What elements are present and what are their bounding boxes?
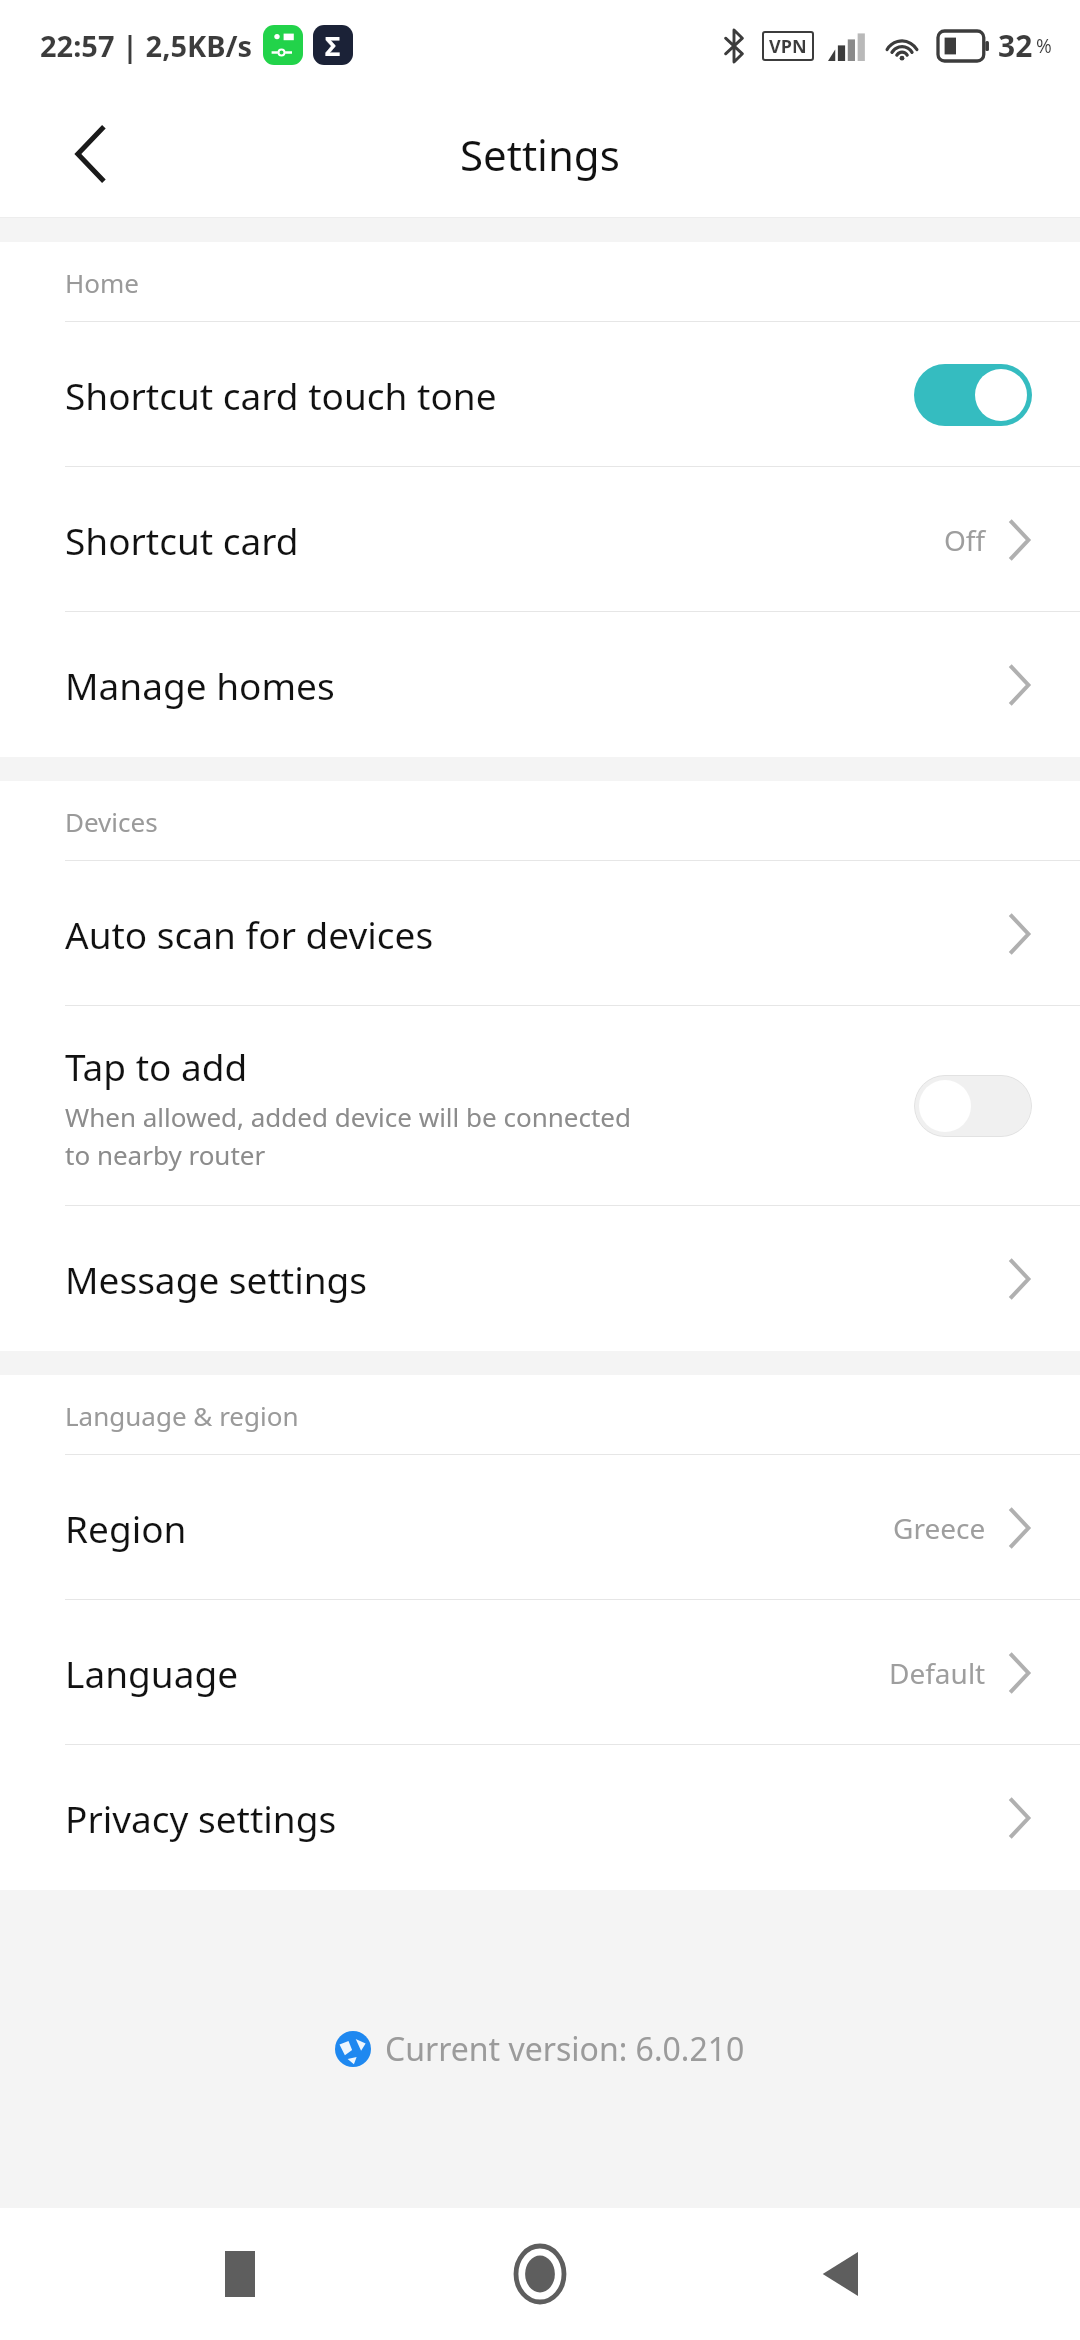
staticText: Off [944,521,986,559]
staticText: Language [65,1648,239,1698]
staticText: Greece [893,1509,986,1547]
button[interactable]: Auto scan for devices [0,861,1080,1006]
button[interactable]: Manage homes [0,612,1080,757]
staticText: VPN [769,34,807,59]
staticText: Shortcut card [65,515,299,565]
staticText: Shortcut card touch tone [65,370,497,420]
staticText: Auto scan for devices [65,909,434,959]
button[interactable]: Back [40,104,140,204]
button[interactable]: Privacy settings [0,1745,1080,1890]
staticText: Default [889,1654,986,1692]
staticText: Region [65,1503,187,1553]
button[interactable]: Tap to add [0,1006,1080,1206]
button[interactable]: Home [480,2214,600,2334]
staticText: Message settings [65,1254,368,1304]
staticText: Σ [325,28,341,63]
staticText: 22:57 | 2,5KB/s [40,26,253,65]
button[interactable]: Region [0,1455,1080,1600]
staticText: Home [65,265,139,300]
staticText: 32 [998,25,1033,66]
staticText: % [1036,33,1052,59]
staticText: Current version: 6.0.210 [385,2027,745,2071]
button[interactable]: Language [0,1600,1080,1745]
staticText: Tap to add [65,1041,248,1091]
staticText: When allowed, added device will be conne… [65,1099,631,1172]
button[interactable]: Message settings [0,1206,1080,1351]
button[interactable]: Toggle on [914,364,1032,426]
button[interactable]: Toggle off [914,1075,1032,1137]
staticText: Devices [65,804,158,839]
staticText: Manage homes [65,660,335,710]
staticText: Language & region [65,1398,299,1433]
button[interactable]: Shortcut card [0,467,1080,612]
button[interactable]: Shortcut card touch tone [0,322,1080,467]
button[interactable]: Recent apps [180,2214,300,2334]
staticText: Privacy settings [65,1793,337,1843]
button[interactable]: Back [780,2214,900,2334]
staticText: Settings [460,126,620,183]
